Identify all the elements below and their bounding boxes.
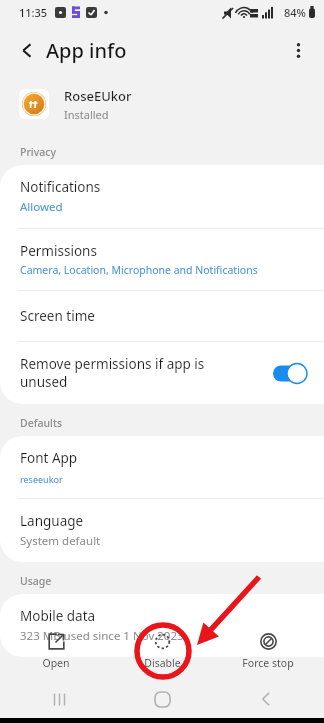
staticText: Font App — [20, 449, 78, 467]
button[interactable]: Back — [221, 680, 311, 718]
button[interactable]: Home — [117, 680, 207, 718]
staticText: App info — [46, 37, 127, 64]
staticText: Force stop — [242, 656, 294, 670]
button[interactable]: Force stop — [218, 629, 318, 674]
staticText: Mobile data — [20, 607, 96, 625]
staticText: Allowed — [20, 199, 63, 215]
staticText: RoseEUkor — [64, 87, 132, 105]
staticText: 84% — [284, 5, 306, 20]
staticText: Defaults — [20, 416, 62, 430]
button[interactable]: Recents — [14, 680, 104, 718]
button[interactable]: Mobile data — [0, 594, 324, 657]
button[interactable]: Language — [0, 499, 324, 562]
staticText: Notifications — [20, 178, 101, 196]
button[interactable]: More options — [281, 33, 315, 67]
staticText: reseeukor — [20, 473, 63, 485]
button[interactable]: Screen time — [0, 291, 324, 341]
staticText: Camera, Location, Microphone and Notific… — [20, 263, 258, 277]
staticText: Language — [20, 512, 84, 530]
staticText: Screen time — [20, 307, 95, 325]
staticText: Privacy — [20, 145, 56, 159]
button[interactable]: Notifications — [0, 165, 324, 228]
staticText: 11:35 — [19, 5, 48, 20]
staticText: Open — [42, 656, 70, 670]
staticText: Usage — [20, 574, 52, 588]
button[interactable]: Font App — [0, 436, 324, 498]
staticText: Disable — [144, 656, 181, 670]
button[interactable]: Permissions — [0, 229, 324, 290]
staticText: Remove permissions if app is unused — [20, 355, 272, 391]
button[interactable]: Disable — [112, 629, 212, 674]
button[interactable]: Back — [10, 33, 44, 67]
button[interactable]: Remove permissions if app is unused — [0, 342, 324, 404]
staticText: Permissions — [20, 242, 97, 260]
staticText: 323 MB used since 1 Nov 2023 — [20, 628, 184, 644]
button[interactable]: Open — [6, 629, 106, 674]
staticText: System default — [20, 533, 101, 549]
staticText: Installed — [64, 107, 109, 122]
